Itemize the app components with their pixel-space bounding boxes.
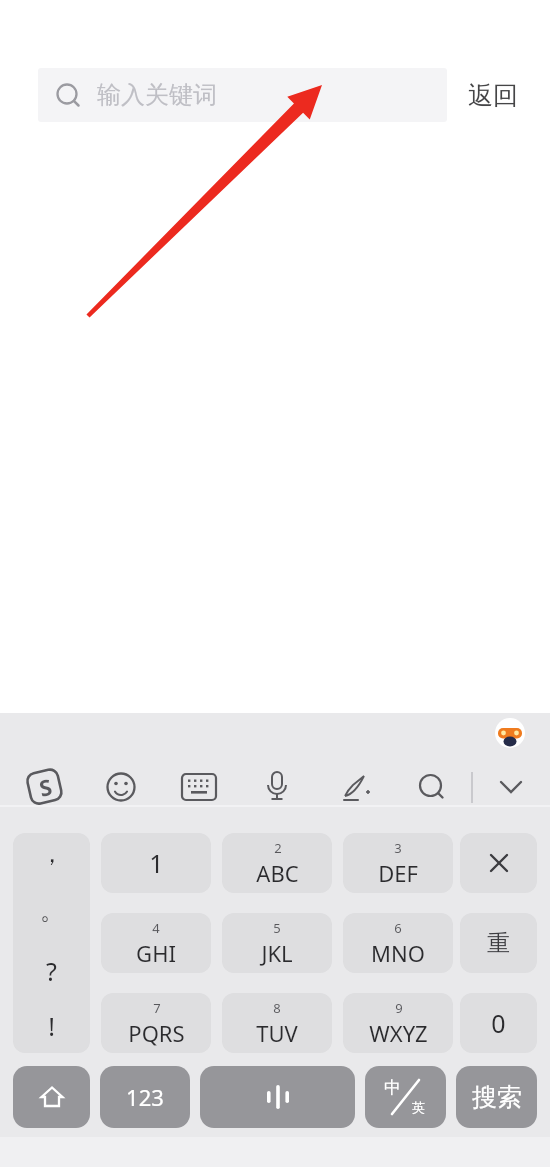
- staticText: ，: [40, 839, 64, 869]
- button[interactable]: [460, 833, 537, 893]
- button[interactable]: [179, 767, 219, 807]
- staticText: 0: [491, 1006, 506, 1040]
- staticText: 6: [394, 919, 402, 937]
- button[interactable]: 123: [100, 1066, 190, 1128]
- staticText: 返回: [468, 80, 518, 111]
- staticText: S: [36, 771, 55, 803]
- staticText: DEF: [378, 858, 418, 888]
- staticText: PQRS: [128, 1018, 185, 1048]
- staticText: 重: [487, 929, 510, 958]
- staticText: MNO: [371, 938, 425, 968]
- staticText: 5: [273, 919, 281, 937]
- staticText: WXYZ: [369, 1018, 428, 1048]
- staticText: 123: [126, 1082, 164, 1112]
- staticText: 2: [274, 839, 282, 857]
- button[interactable]: [259, 768, 295, 804]
- button[interactable]: 0: [460, 993, 537, 1053]
- staticText: 3: [394, 839, 402, 857]
- staticText: 输入关键词: [97, 80, 217, 110]
- button[interactable]: 8: [222, 993, 332, 1053]
- button[interactable]: 5: [222, 913, 332, 973]
- button[interactable]: 6: [343, 913, 453, 973]
- button[interactable]: [106, 772, 136, 802]
- button[interactable]: 中: [365, 1066, 446, 1128]
- staticText: TUV: [256, 1018, 298, 1048]
- button[interactable]: ，: [13, 833, 90, 1053]
- staticText: !: [48, 1009, 55, 1043]
- button[interactable]: 1: [101, 833, 211, 893]
- staticText: 搜索: [472, 1082, 522, 1113]
- button[interactable]: 9: [343, 993, 453, 1053]
- button[interactable]: 7: [101, 993, 211, 1053]
- staticText: ABC: [256, 858, 299, 888]
- staticText: 7: [153, 999, 161, 1017]
- staticText: 英: [412, 1099, 425, 1115]
- button[interactable]: 输入关键词: [38, 68, 447, 122]
- button[interactable]: S: [22, 764, 68, 810]
- staticText: 1: [149, 846, 164, 880]
- staticText: 中: [384, 1077, 401, 1098]
- button[interactable]: [200, 1066, 355, 1128]
- button[interactable]: 重: [460, 913, 537, 973]
- staticText: JKL: [261, 938, 293, 968]
- button[interactable]: [415, 770, 449, 804]
- staticText: 8: [273, 999, 281, 1017]
- button[interactable]: 2: [222, 833, 332, 893]
- button[interactable]: [495, 771, 527, 803]
- staticText: GHI: [136, 938, 176, 968]
- staticText: 9: [395, 999, 403, 1017]
- button[interactable]: 搜索: [456, 1066, 537, 1128]
- button[interactable]: 返回: [455, 68, 530, 122]
- staticText: 4: [152, 919, 160, 937]
- button[interactable]: 4: [101, 913, 211, 973]
- button[interactable]: [337, 767, 377, 807]
- staticText: ?: [46, 954, 57, 988]
- button[interactable]: [13, 1066, 90, 1128]
- staticText: 。: [40, 896, 64, 926]
- button[interactable]: 3: [343, 833, 453, 893]
